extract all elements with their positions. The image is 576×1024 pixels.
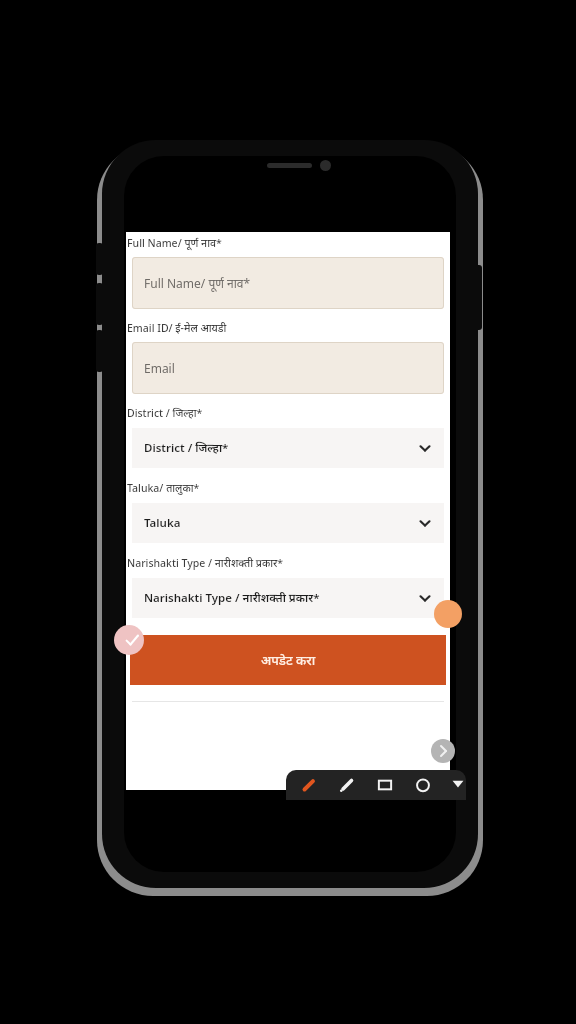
button[interactable]: Ellipse <box>412 774 434 796</box>
button[interactable]: Email <box>132 342 444 394</box>
staticText: Email ID/ ई-मेल आयडी <box>127 321 227 335</box>
staticText: Narishakti Type / नारीशक्ती प्रकार* <box>127 556 284 570</box>
button[interactable]: Taluka <box>132 503 444 543</box>
button[interactable]: District / जिल्हा* <box>132 428 444 468</box>
button[interactable]: Marker <box>298 774 320 796</box>
staticText: Full Name/ पूर्ण नाव* <box>127 236 222 250</box>
staticText: District / जिल्हा* <box>127 406 203 420</box>
staticText: अपडेट करा <box>261 651 316 669</box>
staticText: Narishakti Type / नारीशक्ती प्रकार* <box>144 590 320 606</box>
other: Notification <box>114 625 144 655</box>
staticText: Full Name/ पूर्ण नाव* <box>144 275 251 291</box>
staticText: District / जिल्हा* <box>144 440 229 456</box>
button[interactable]: Rectangle <box>374 774 396 796</box>
button[interactable]: Crop <box>450 774 466 796</box>
button[interactable]: Narishakti Type / नारीशक्ती प्रकार* <box>132 578 444 618</box>
button[interactable]: Pen <box>336 774 358 796</box>
staticText: Email <box>144 360 175 376</box>
other: Help <box>434 600 462 628</box>
button[interactable]: Full Name/ पूर्ण नाव* <box>132 257 444 309</box>
staticText: Taluka/ तालुका* <box>127 481 200 495</box>
button[interactable]: अपडेट करा <box>130 635 446 685</box>
staticText: Taluka <box>144 515 181 531</box>
button[interactable]: Scroll right <box>431 739 455 763</box>
